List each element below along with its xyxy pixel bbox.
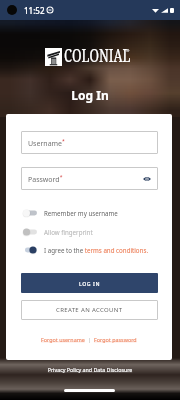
staticText: I agree to the terms and conditions. — [44, 246, 149, 254]
button[interactable]: LOG IN — [21, 273, 158, 293]
staticText: 11:52 — [24, 5, 45, 16]
button[interactable]: Username* — [21, 131, 158, 154]
button[interactable]: Remember my username — [23, 206, 118, 220]
staticText: Password* — [28, 174, 63, 184]
staticText: Remember my username — [44, 209, 118, 217]
staticText: Allow fingerprint — [44, 228, 93, 236]
staticText: Log In — [0, 87, 180, 103]
staticText: | — [85, 336, 94, 343]
staticText: LOG IN — [79, 280, 101, 287]
button[interactable]: Forgot password — [94, 336, 137, 343]
other: Show password — [143, 176, 151, 182]
button[interactable]: Password* — [21, 167, 158, 190]
button[interactable]: Privacy Policy and Data Disclosure — [0, 366, 180, 373]
button[interactable]: CREATE AN ACCOUNT — [21, 300, 158, 320]
button[interactable]: I agree to the terms and conditions. — [23, 243, 149, 257]
button[interactable]: Allow fingerprint — [23, 225, 93, 239]
staticText: ® — [126, 48, 130, 53]
staticText: CREATE AN ACCOUNT — [56, 306, 123, 314]
button[interactable]: Forgot username — [41, 336, 85, 343]
staticText: COLONIAL — [64, 42, 131, 67]
staticText: Username* — [28, 138, 65, 148]
